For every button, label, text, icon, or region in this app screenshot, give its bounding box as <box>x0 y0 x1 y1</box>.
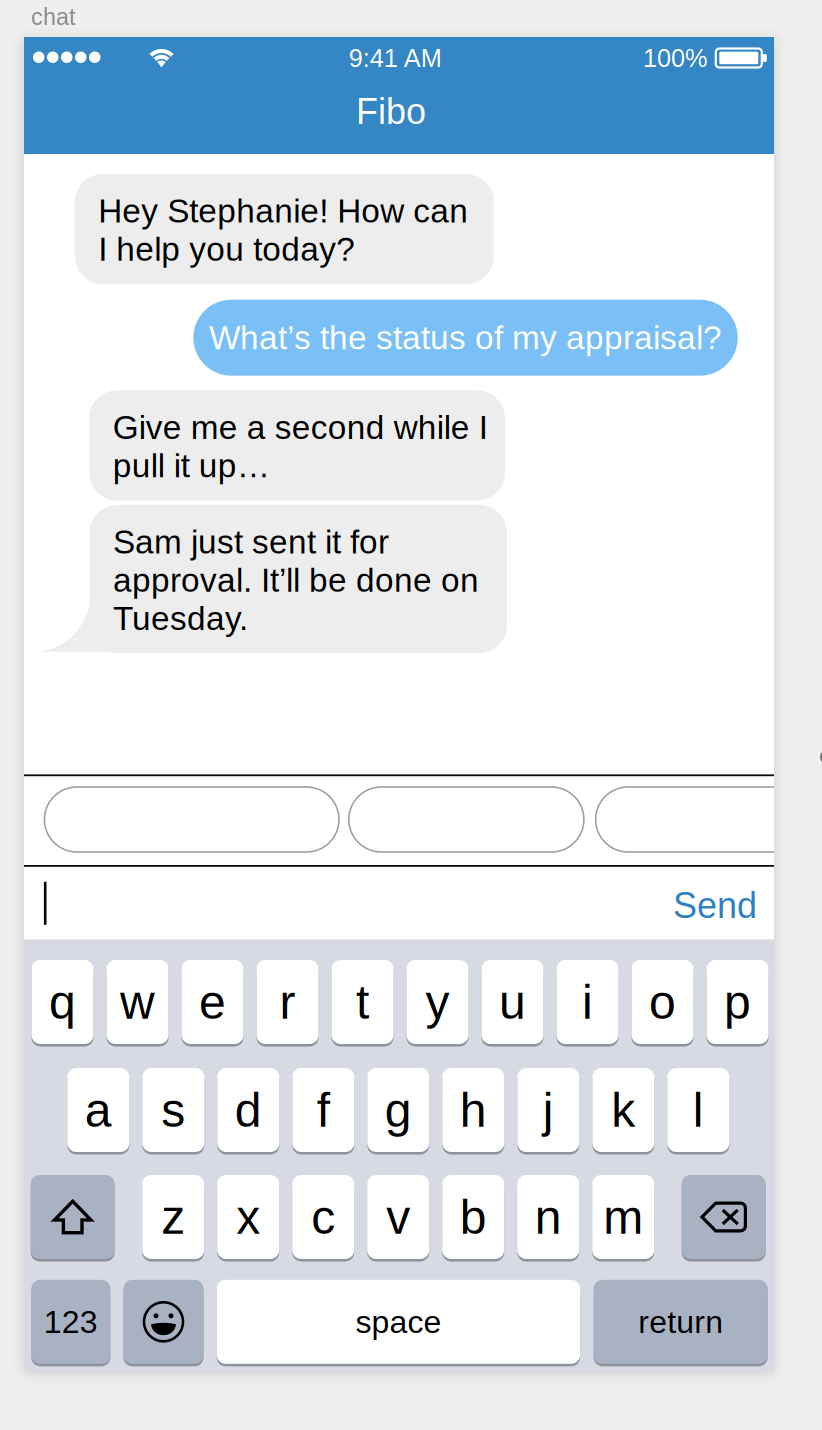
staticText: y <box>425 975 449 1029</box>
staticText: w <box>120 975 155 1029</box>
staticText: t <box>356 975 369 1029</box>
staticText: What’s the status of my appraisal? <box>209 319 722 356</box>
staticText: p <box>724 975 751 1029</box>
button[interactable]: return <box>594 1280 768 1367</box>
button[interactable]: Delete <box>682 1175 766 1262</box>
button[interactable]: u <box>481 960 543 1047</box>
staticText: pull it up… <box>113 447 270 484</box>
staticText: m <box>603 1190 643 1244</box>
staticText: Tuesday. <box>113 600 248 637</box>
button[interactable]: i <box>556 960 618 1047</box>
staticText: b <box>460 1190 487 1244</box>
staticText: v <box>386 1190 410 1244</box>
button[interactable]: t <box>331 960 393 1047</box>
staticText: space <box>355 1304 441 1340</box>
staticText: n <box>535 1190 562 1244</box>
staticText: f <box>317 1083 330 1137</box>
button[interactable]: a <box>67 1068 129 1155</box>
staticText: z <box>161 1190 185 1244</box>
button[interactable]: e <box>181 960 243 1047</box>
button[interactable]: y <box>406 960 468 1047</box>
staticText: k <box>611 1083 635 1137</box>
button[interactable]: r <box>256 960 318 1047</box>
button[interactable]: o <box>631 960 693 1047</box>
staticText: 100% <box>643 44 708 72</box>
button[interactable]: m <box>592 1175 654 1262</box>
staticText: q <box>49 975 76 1029</box>
staticText: d <box>235 1083 262 1137</box>
button[interactable]: x <box>217 1175 279 1262</box>
button[interactable]: l <box>667 1068 729 1155</box>
button[interactable]: n <box>517 1175 579 1262</box>
staticText: r <box>279 975 295 1029</box>
button[interactable]: g <box>367 1068 429 1155</box>
button[interactable]: k <box>592 1068 654 1155</box>
staticText: j <box>543 1083 554 1137</box>
staticText: g <box>385 1083 412 1137</box>
staticText: l <box>693 1083 704 1137</box>
staticText: s <box>161 1083 185 1137</box>
button[interactable]: space <box>217 1280 580 1367</box>
staticText: Fibo <box>356 91 426 132</box>
staticText: chat <box>31 4 75 30</box>
button[interactable]: Shift <box>31 1175 115 1262</box>
button[interactable]: s <box>142 1068 204 1155</box>
staticText: o <box>649 975 676 1029</box>
staticText: 123 <box>44 1304 98 1340</box>
button[interactable]: Emoji keyboard <box>123 1280 203 1367</box>
staticText: Sam just sent it for <box>113 523 389 560</box>
button[interactable]: j <box>517 1068 579 1155</box>
button[interactable]: v <box>367 1175 429 1262</box>
button[interactable]: h <box>442 1068 504 1155</box>
staticText: approval. It’ll be done on <box>113 562 479 599</box>
staticText: x <box>236 1190 260 1244</box>
staticText: a <box>85 1083 112 1137</box>
button[interactable]: f <box>292 1068 354 1155</box>
staticText: c <box>311 1190 335 1244</box>
staticText: Send <box>673 885 757 926</box>
button[interactable]: w <box>106 960 168 1047</box>
button[interactable]: c <box>292 1175 354 1262</box>
button[interactable]: b <box>442 1175 504 1262</box>
button[interactable]: d <box>217 1068 279 1155</box>
staticText: I help you today? <box>98 231 355 268</box>
button[interactable]: q <box>31 960 93 1047</box>
staticText: u <box>499 975 526 1029</box>
button[interactable]: 123 <box>31 1280 110 1367</box>
staticText: 9:41 AM <box>349 44 442 72</box>
button[interactable]: p <box>706 960 768 1047</box>
staticText: e <box>199 975 226 1029</box>
staticText: h <box>460 1083 487 1137</box>
button[interactable]: z <box>142 1175 204 1262</box>
staticText: Give me a second while I <box>113 409 488 446</box>
button[interactable]: Send <box>597 869 757 942</box>
staticText: i <box>582 975 593 1029</box>
staticText: Hey Stephanie! How can <box>98 192 468 230</box>
staticText: return <box>638 1304 723 1340</box>
